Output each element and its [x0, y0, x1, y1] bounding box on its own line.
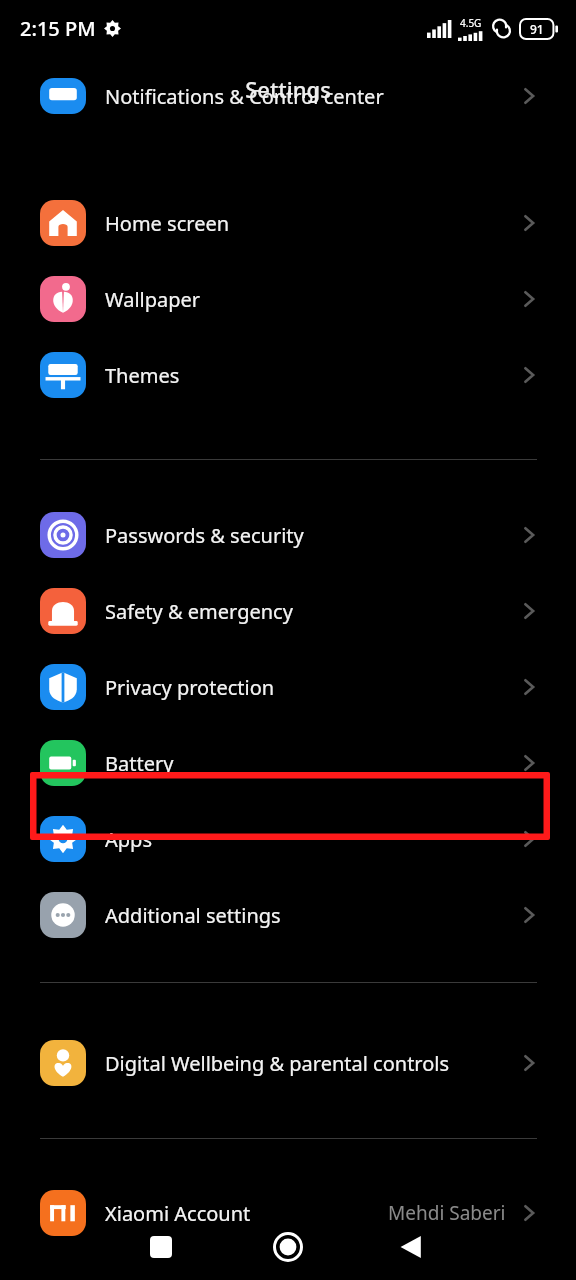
button[interactable]: Home screen — [0, 185, 576, 261]
button[interactable]: Privacy protection — [0, 649, 576, 725]
button[interactable]: Themes — [0, 337, 576, 413]
staticText: Digital Wellbeing & parental controls — [105, 1050, 450, 1077]
staticText: Mehdi Saberi — [388, 1200, 506, 1226]
staticText: Battery — [105, 750, 174, 777]
staticText: Apps — [105, 826, 152, 853]
staticText: Privacy protection — [105, 674, 275, 701]
button[interactable]: Battery — [0, 725, 576, 801]
button[interactable]: Apps — [0, 801, 576, 877]
button[interactable]: Digital Wellbeing & parental controls — [0, 1025, 576, 1101]
staticText: Themes — [105, 362, 180, 389]
staticText: 2:15 PM — [20, 15, 96, 42]
button[interactable]: Wallpaper — [0, 261, 576, 337]
staticText: Notifications & Control center — [105, 83, 384, 110]
button[interactable]: Notifications & Control center — [0, 78, 576, 114]
button[interactable]: Safety & emergency — [0, 573, 576, 649]
button[interactable]: Home — [265, 1224, 311, 1270]
button[interactable]: Passwords & security — [0, 497, 576, 573]
button[interactable]: Back — [389, 1224, 435, 1270]
button[interactable]: Recent apps — [138, 1224, 184, 1270]
staticText: Safety & emergency — [105, 598, 293, 625]
staticText: Settings — [245, 74, 331, 104]
staticText: Xiaomi Account — [105, 1200, 251, 1227]
staticText: 91 — [530, 21, 544, 37]
staticText: Passwords & security — [105, 522, 304, 549]
staticText: 4.5G — [460, 16, 482, 30]
button[interactable]: Additional settings — [0, 877, 576, 953]
staticText: Additional settings — [105, 902, 281, 929]
staticText: Home screen — [105, 210, 230, 237]
button[interactable]: Xiaomi Account — [0, 1175, 576, 1251]
staticText: Wallpaper — [105, 286, 201, 313]
